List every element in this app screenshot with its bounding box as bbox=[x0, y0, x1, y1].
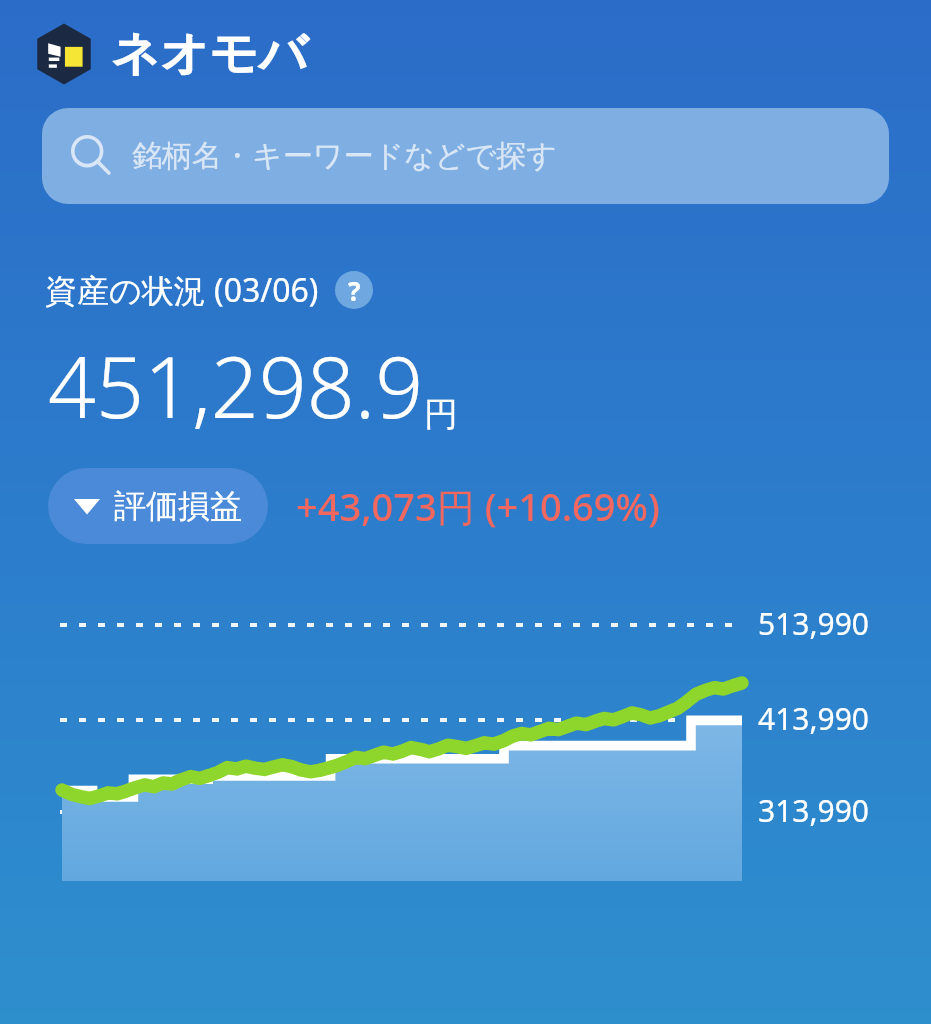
staticText: 451,298.9 bbox=[48, 328, 424, 442]
staticText: 銘柄名・キーワードなどで探す bbox=[132, 137, 557, 175]
staticText: 413,990 bbox=[758, 698, 869, 739]
staticText: 313,990 bbox=[758, 790, 869, 831]
staticText: 513,990 bbox=[758, 603, 869, 644]
staticText: ? bbox=[348, 273, 361, 308]
button[interactable]: ネオモバ bbox=[0, 0, 931, 108]
staticText: 評価損益 bbox=[114, 486, 242, 526]
staticText: +43,073円 (+10.69%) bbox=[296, 480, 660, 532]
button[interactable]: 銘柄名・キーワードなどで探す bbox=[42, 108, 889, 204]
button[interactable]: 評価損益 bbox=[48, 468, 268, 544]
staticText: 円 bbox=[424, 393, 458, 436]
button[interactable]: 資産の状況 (03/06) bbox=[45, 268, 373, 312]
button[interactable]: 513,990 bbox=[0, 584, 931, 904]
staticText: ネオモバ bbox=[111, 24, 308, 84]
staticText: 資産の状況 (03/06) bbox=[45, 268, 319, 312]
button[interactable]: ヘルプ bbox=[335, 271, 373, 309]
